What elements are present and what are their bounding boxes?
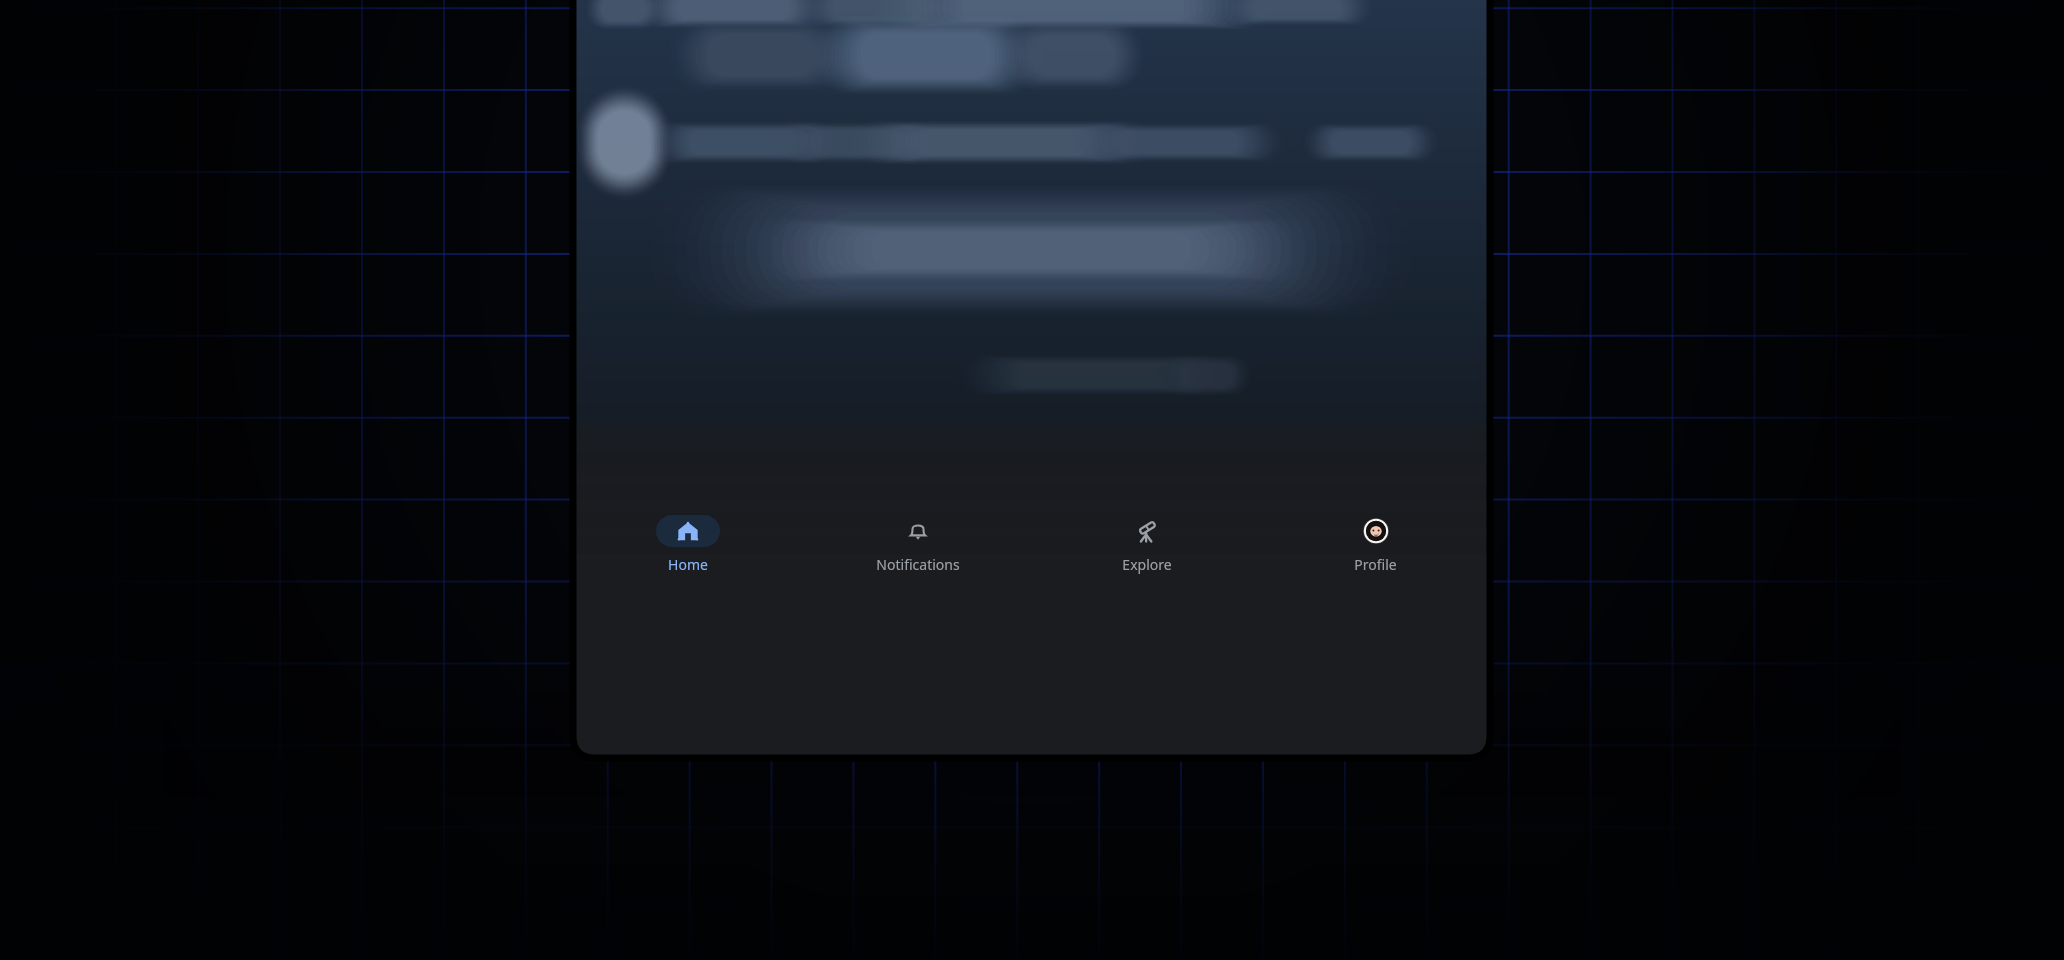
staticText: Notifications	[876, 555, 960, 574]
button[interactable]: Profile	[1261, 499, 1490, 758]
other: Profile	[1363, 518, 1389, 544]
staticText: Home	[668, 555, 708, 574]
other: Notifications	[907, 520, 929, 542]
staticText: Profile	[1354, 555, 1397, 574]
other: Explore	[1136, 520, 1158, 542]
button[interactable]: Notifications	[803, 499, 1032, 758]
other: Home	[677, 520, 699, 542]
staticText: Explore	[1122, 555, 1172, 574]
button[interactable]: Explore	[1032, 499, 1261, 758]
button[interactable]: Home	[573, 499, 803, 758]
